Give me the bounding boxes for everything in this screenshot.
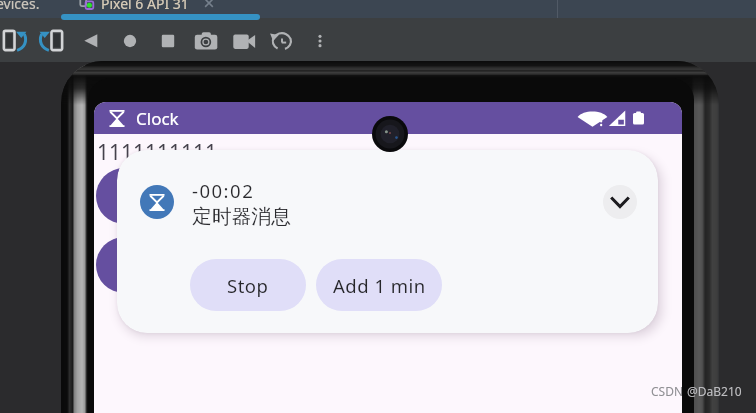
staticText: Clock — [136, 107, 179, 130]
staticText: -00:02 — [192, 178, 255, 203]
staticText: @DaB210 — [687, 383, 742, 399]
button[interactable]: More options — [307, 28, 333, 54]
button[interactable]: Close tab — [203, 0, 215, 9]
button[interactable]: Home — [117, 28, 143, 54]
staticText: 定时器消息 — [192, 204, 291, 229]
button[interactable]: Record screen — [231, 28, 257, 54]
button[interactable]: Snapshots — [269, 28, 295, 54]
staticText: 1111111111 — [97, 138, 218, 167]
staticText: Pixel 6 API 31 — [101, 0, 189, 12]
staticText: Add 1 min — [333, 273, 426, 298]
staticText: CSDN — [651, 383, 684, 399]
button[interactable] — [62, 0, 260, 18]
staticText: evices. — [0, 0, 40, 13]
staticText: Stop — [227, 273, 269, 298]
button[interactable]: Stop — [190, 259, 306, 311]
button[interactable]: Rotate left — [1, 28, 27, 54]
button[interactable]: Add 1 min — [316, 259, 442, 311]
button[interactable]: Take screenshot — [193, 28, 219, 54]
button[interactable]: Expand notification — [603, 185, 637, 219]
button[interactable]: Rotate right — [39, 28, 65, 54]
button[interactable]: Overview — [155, 28, 181, 54]
button[interactable]: Back — [79, 28, 105, 54]
